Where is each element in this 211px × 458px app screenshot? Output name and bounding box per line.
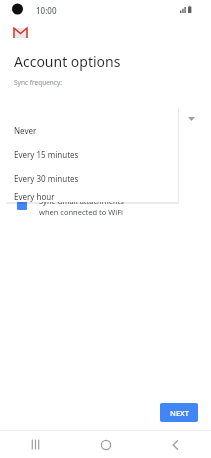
button[interactable]: Recents <box>0 431 71 458</box>
button[interactable]: Open sync frequency dropdown <box>184 112 198 126</box>
staticText: Sync Gmail attachments when connected to… <box>39 196 124 217</box>
staticText: Account options <box>14 52 121 71</box>
staticText: 10:00 <box>36 5 57 16</box>
staticText: Every 30 minutes <box>14 173 79 184</box>
staticText: Every hour <box>14 191 55 202</box>
staticText: NEXT <box>170 408 189 418</box>
button[interactable]: NEXT <box>160 403 198 422</box>
button[interactable]: Home <box>71 431 141 458</box>
staticText: Every 15 minutes <box>14 149 79 160</box>
button[interactable]: Every 30 minutes <box>5 166 178 190</box>
staticText: Never <box>14 125 37 136</box>
button[interactable]: Never <box>5 105 178 142</box>
button[interactable]: Every 15 minutes <box>5 142 178 166</box>
staticText: Sync frequency: <box>14 78 63 87</box>
button[interactable]: Every hour <box>5 190 178 202</box>
button[interactable]: Sync Gmail attachments when connected to… <box>17 196 199 217</box>
button[interactable]: Back <box>141 431 211 458</box>
